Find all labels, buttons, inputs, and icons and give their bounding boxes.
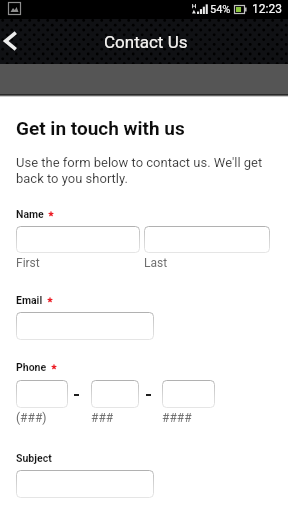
button[interactable]: [144, 226, 270, 253]
staticText: Name: [16, 208, 44, 220]
staticText: ###: [91, 411, 151, 425]
button[interactable]: [16, 380, 68, 408]
staticText: Last: [144, 256, 270, 270]
button[interactable]: [16, 312, 154, 340]
staticText: (###): [16, 411, 76, 425]
staticText: First: [16, 256, 140, 270]
button[interactable]: Back: [0, 28, 28, 56]
staticText: Use the form below to contact us. We'll …: [16, 155, 270, 186]
staticText: Email: [16, 294, 43, 306]
staticText: Subject: [16, 452, 52, 464]
button[interactable]: [16, 470, 154, 498]
staticText: ####: [162, 411, 222, 425]
staticText: Get in touch with us: [16, 117, 185, 139]
button[interactable]: [16, 226, 140, 253]
staticText: Phone: [16, 361, 47, 373]
staticText: 54%: [210, 3, 231, 16]
button[interactable]: [162, 380, 215, 408]
staticText: 12:23: [252, 2, 282, 16]
staticText: Contact Us: [104, 32, 188, 52]
button[interactable]: [91, 380, 139, 408]
